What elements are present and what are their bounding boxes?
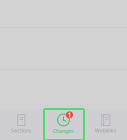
staticText: 1 — [67, 110, 71, 119]
button[interactable]: Weblinks — [85, 108, 127, 140]
button[interactable]: Changes — [42, 107, 85, 140]
staticText: Sections — [11, 127, 32, 134]
staticText: Changes — [53, 127, 74, 135]
button[interactable]: Sections — [0, 108, 42, 140]
staticText: Weblinks — [95, 127, 117, 134]
